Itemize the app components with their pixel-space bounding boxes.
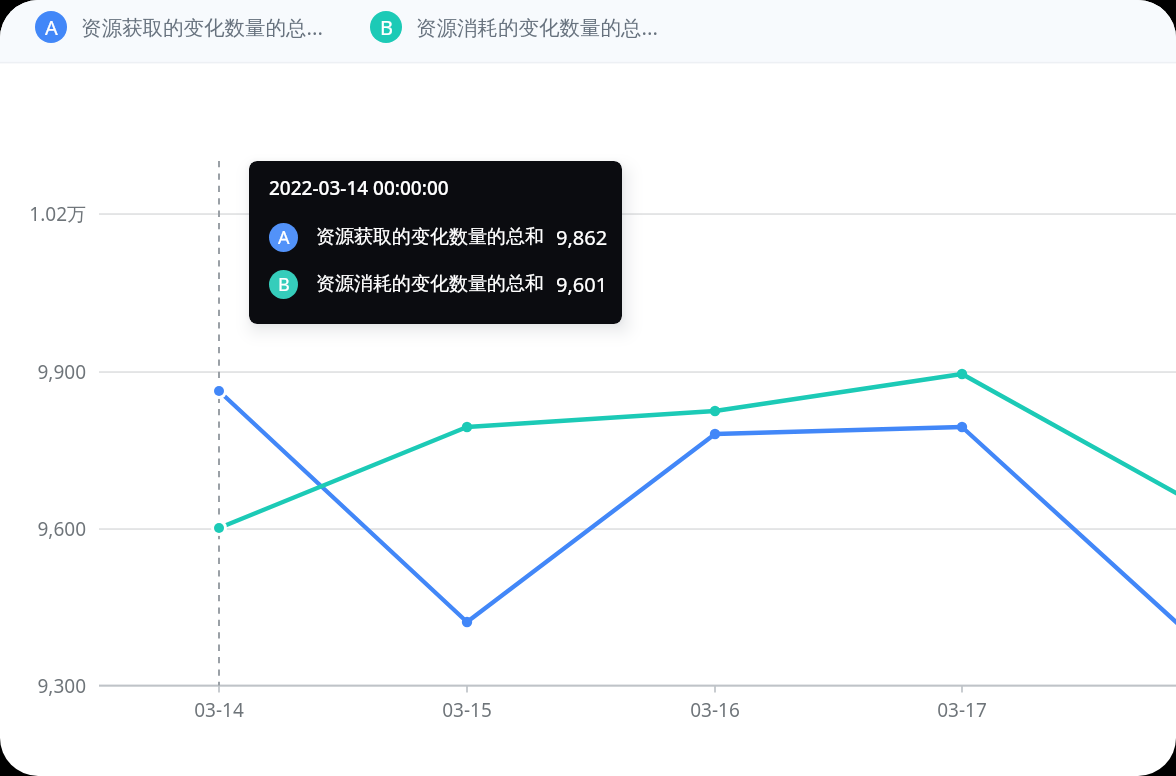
staticText: A xyxy=(278,225,290,250)
staticText: 9,600 xyxy=(37,516,86,542)
staticText: 1.02万 xyxy=(29,201,86,227)
staticText: B xyxy=(278,272,290,297)
staticText: 资源获取的变化数量的总和 xyxy=(316,225,544,249)
staticText: A xyxy=(45,14,58,41)
staticText: 9,900 xyxy=(37,359,86,385)
staticText: 资源获取的变化数量的总... xyxy=(81,13,323,41)
staticText: 03-14 xyxy=(194,697,244,721)
button[interactable]: A xyxy=(25,3,333,51)
staticText: 9,862 xyxy=(556,224,608,251)
staticText: B xyxy=(380,14,393,41)
staticText: 9,300 xyxy=(37,673,86,699)
staticText: 资源消耗的变化数量的总和 xyxy=(316,272,544,296)
button[interactable]: B xyxy=(360,3,668,51)
staticText: 资源消耗的变化数量的总... xyxy=(416,13,658,41)
staticText: 2022-03-14 00:00:00 xyxy=(269,175,449,201)
staticText: 03-15 xyxy=(442,697,492,721)
staticText: 03-17 xyxy=(937,697,987,721)
staticText: 03-16 xyxy=(690,697,740,721)
staticText: 9,601 xyxy=(556,271,608,298)
other: Data point details for 2022-03-14 xyxy=(249,161,622,324)
